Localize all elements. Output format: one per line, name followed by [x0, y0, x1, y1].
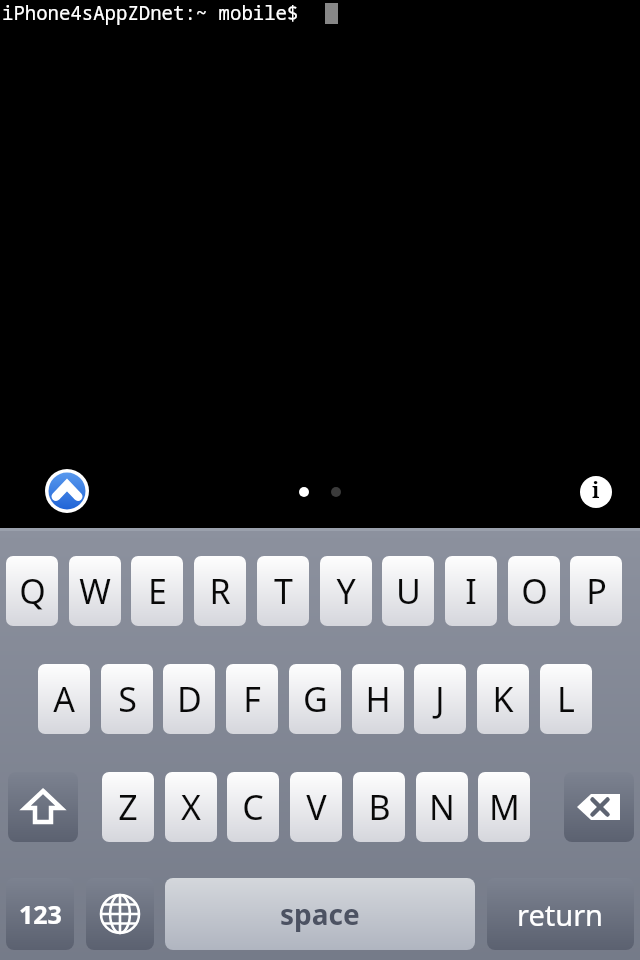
staticText: Z	[118, 784, 138, 830]
button[interactable]: Return	[487, 878, 634, 950]
staticText: S	[118, 676, 137, 722]
button[interactable]: E	[131, 556, 183, 626]
staticText: B	[368, 784, 391, 830]
button[interactable]: Y	[320, 556, 372, 626]
staticText: space	[280, 895, 360, 933]
staticText: R	[209, 568, 231, 614]
staticText: K	[492, 676, 514, 722]
button[interactable]: D	[163, 664, 215, 734]
button[interactable]: F	[226, 664, 278, 734]
staticText: i	[592, 476, 600, 505]
staticText: W	[79, 568, 111, 614]
button[interactable]: T	[257, 556, 309, 626]
staticText: U	[396, 568, 421, 614]
staticText: 123	[19, 897, 62, 931]
button[interactable]: Change keyboard	[86, 878, 154, 950]
button[interactable]: Z	[102, 772, 154, 842]
button[interactable]: U	[382, 556, 434, 626]
button[interactable]: V	[290, 772, 342, 842]
staticText: L	[557, 676, 575, 722]
staticText: N	[429, 784, 455, 830]
button[interactable]: A	[38, 664, 90, 734]
button[interactable]: X	[165, 772, 217, 842]
staticText: J	[435, 676, 445, 722]
staticText: Y	[336, 568, 356, 614]
staticText: G	[303, 676, 328, 722]
button[interactable]: H	[352, 664, 404, 734]
button[interactable]: S	[101, 664, 153, 734]
staticText: T	[274, 568, 293, 614]
button[interactable]: C	[227, 772, 279, 842]
button[interactable]: M	[478, 772, 530, 842]
staticText: iPhone4sAppZDnet:~ mobile$	[2, 0, 299, 26]
staticText: O	[521, 568, 548, 614]
button[interactable]: Numbers	[6, 878, 74, 950]
staticText: C	[242, 784, 264, 830]
staticText: X	[181, 784, 201, 830]
staticText: I	[465, 568, 477, 614]
button[interactable]: Info	[580, 476, 612, 508]
staticText: A	[53, 676, 75, 722]
button[interactable]: Delete	[564, 772, 634, 842]
staticText: M	[489, 784, 520, 830]
button[interactable]: B	[353, 772, 405, 842]
button[interactable]: J	[414, 664, 466, 734]
button[interactable]: N	[416, 772, 468, 842]
button[interactable]: G	[289, 664, 341, 734]
staticText: F	[243, 676, 261, 722]
button[interactable]: Shift	[8, 772, 78, 842]
button[interactable]: I	[445, 556, 497, 626]
staticText: V	[306, 784, 327, 830]
button[interactable]: L	[540, 664, 592, 734]
button[interactable]: P	[570, 556, 622, 626]
staticText: Q	[19, 568, 46, 614]
button[interactable]: W	[69, 556, 121, 626]
button[interactable]: Q	[6, 556, 58, 626]
button[interactable]: space	[165, 878, 475, 950]
button[interactable]: R	[194, 556, 246, 626]
button[interactable]: O	[508, 556, 560, 626]
staticText: E	[148, 568, 167, 614]
staticText: P	[586, 568, 607, 614]
button[interactable]: Scroll up	[45, 469, 89, 513]
staticText: H	[365, 676, 391, 722]
staticText: D	[177, 676, 202, 722]
staticText: return	[517, 895, 604, 934]
button[interactable]: K	[477, 664, 529, 734]
